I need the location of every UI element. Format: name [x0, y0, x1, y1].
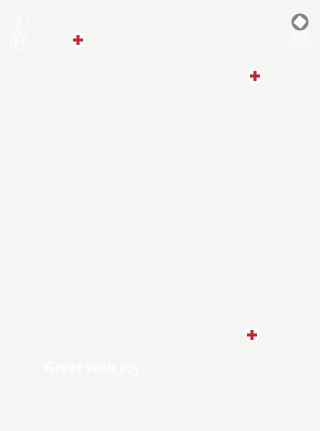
button[interactable]: Shop this item: [243, 326, 261, 344]
button[interactable]: Shop this story: [289, 11, 311, 33]
button[interactable]: Shop this item: [246, 67, 264, 85]
button[interactable]: Save to Pinterest: [11, 32, 27, 48]
staticText: SHOP: [289, 29, 310, 39]
staticText: Greet with Joy: [44, 357, 140, 377]
button[interactable]: Share on Facebook: [11, 14, 27, 30]
button[interactable]: Shop this item: [69, 31, 87, 49]
